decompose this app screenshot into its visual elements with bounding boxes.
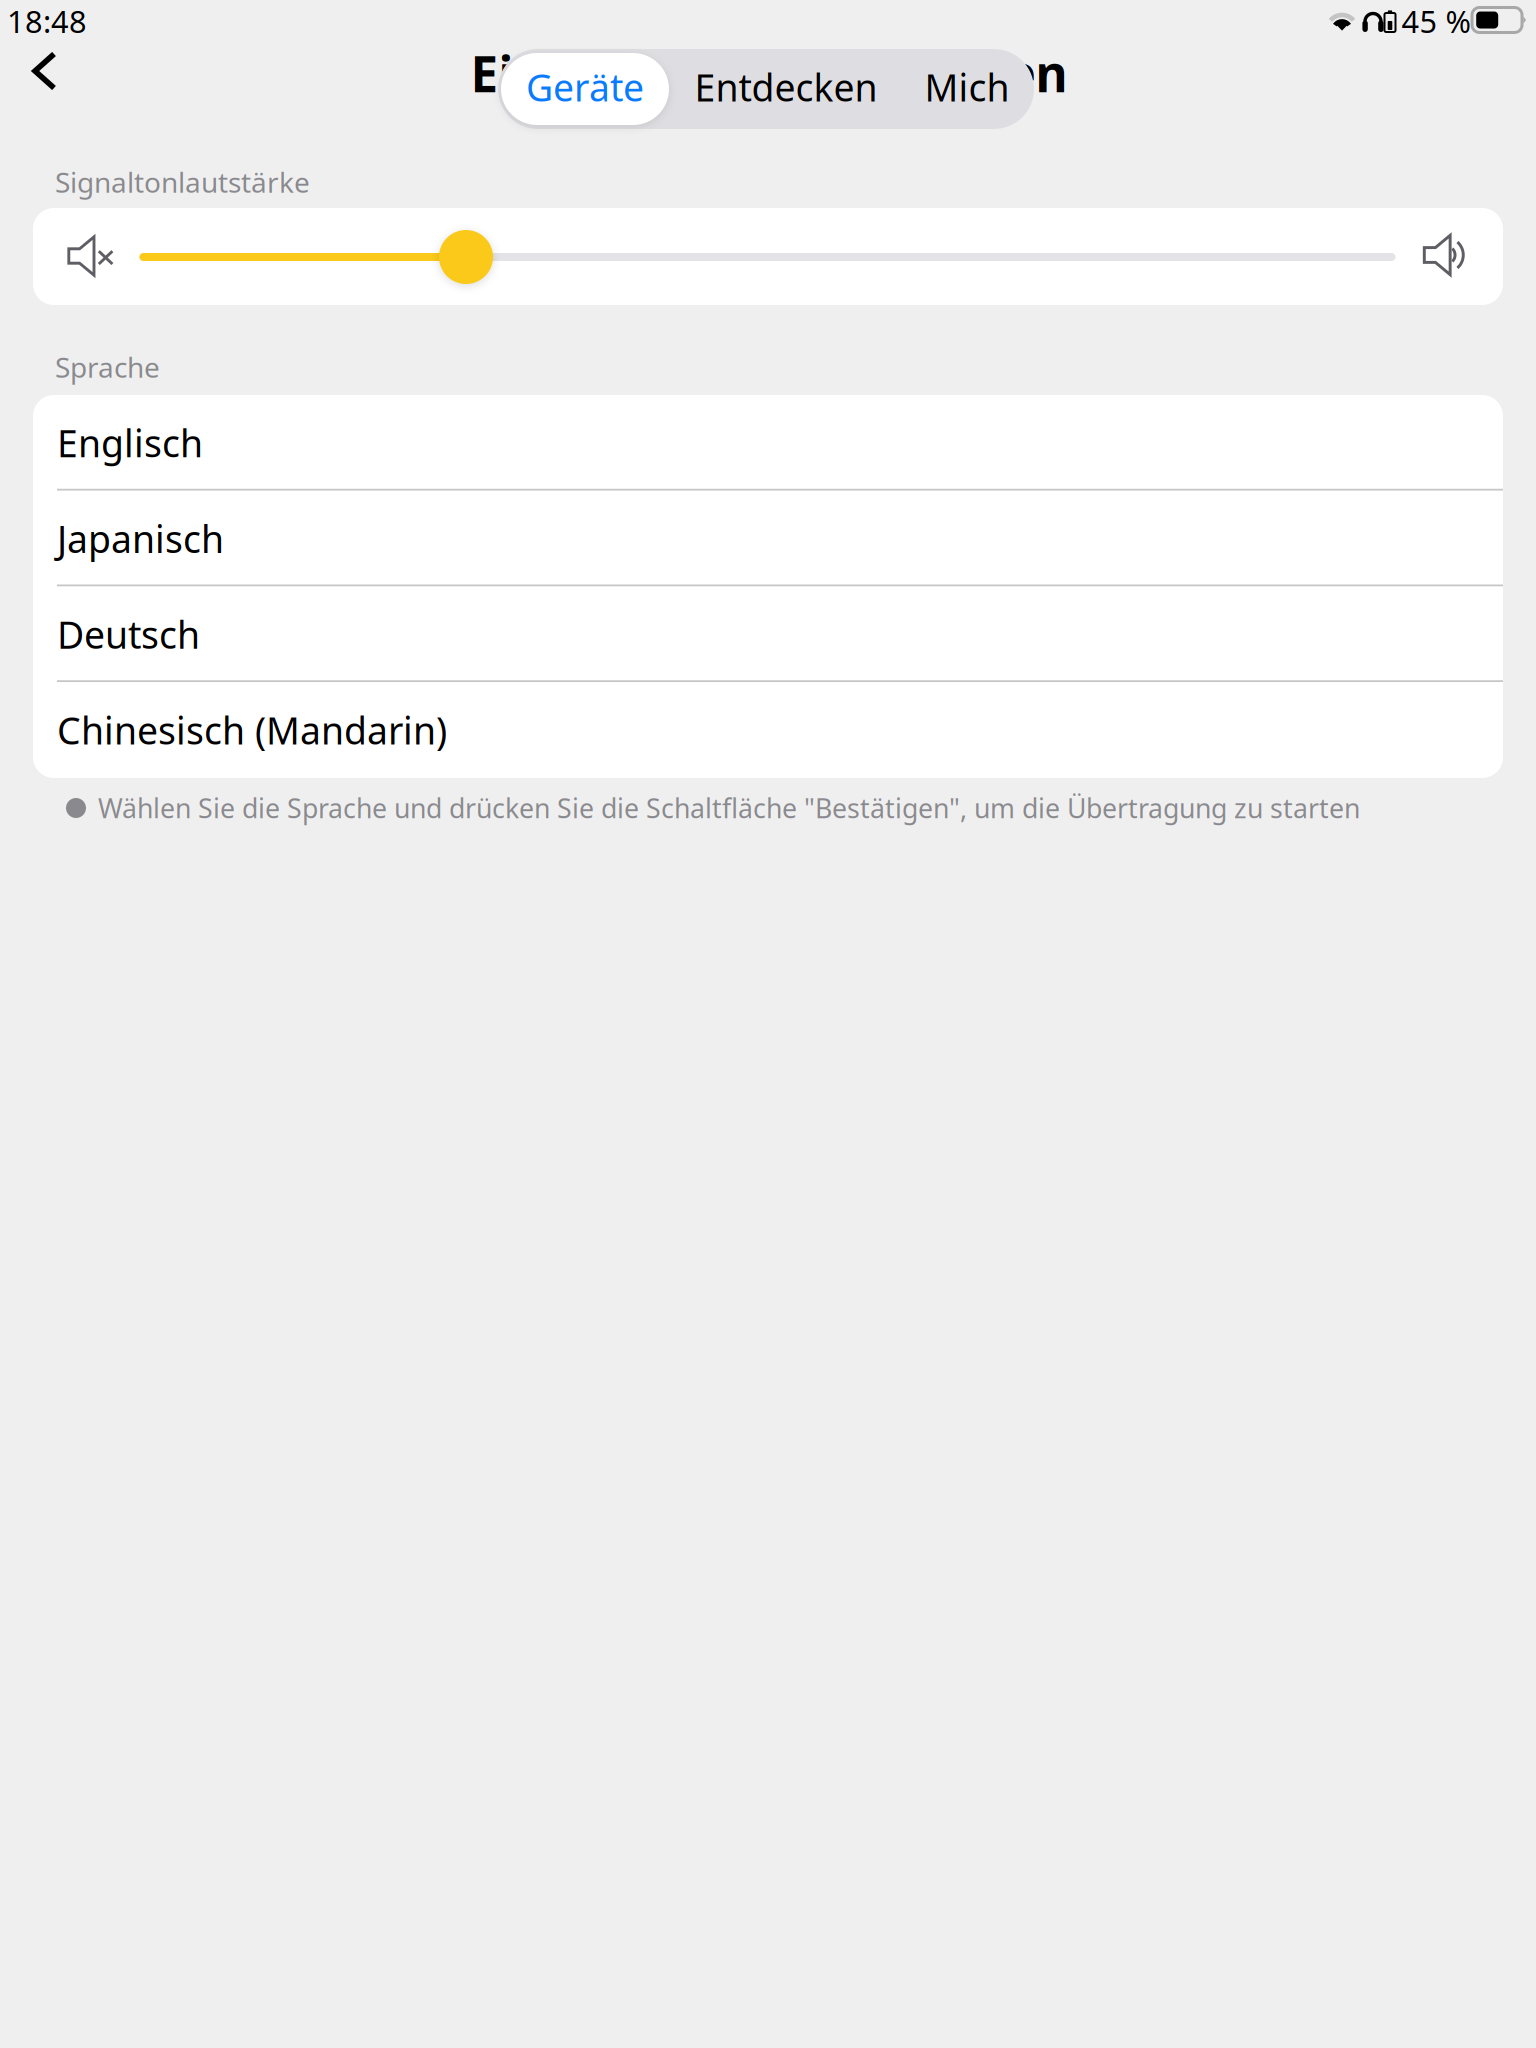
staticText: Mich <box>924 62 1009 112</box>
button[interactable]: Ton aus <box>66 234 118 278</box>
staticText: Chinesisch (Mandarin) <box>57 705 447 755</box>
button[interactable]: Entdecken <box>672 49 900 125</box>
button[interactable]: Mich <box>900 49 1034 125</box>
button[interactable]: Signaltonlautstärke <box>139 230 1395 284</box>
button[interactable]: Japanisch <box>33 491 1503 587</box>
staticText: Einstellungen verwalten <box>470 40 1067 106</box>
button[interactable]: Deutsch <box>33 586 1503 682</box>
staticText: Signaltonlautstärke <box>55 163 310 201</box>
staticText: Entdecken <box>694 62 877 112</box>
button[interactable]: Ton laut <box>1420 233 1468 277</box>
staticText: Englisch <box>57 418 203 468</box>
staticText: Wählen Sie die Sprache und drücken Sie d… <box>98 790 1360 826</box>
button[interactable]: Geräte <box>498 49 672 125</box>
button[interactable]: Englisch <box>33 395 1503 491</box>
button[interactable]: Zurück <box>14 40 76 102</box>
button[interactable]: Chinesisch (Mandarin) <box>33 682 1503 778</box>
staticText: Japanisch <box>57 514 224 563</box>
staticText: Geräte <box>526 62 644 112</box>
staticText: 45 % <box>1401 1 1470 41</box>
staticText: Deutsch <box>57 610 200 659</box>
staticText: 18:48 <box>7 1 87 41</box>
staticText: Sprache <box>55 348 160 386</box>
